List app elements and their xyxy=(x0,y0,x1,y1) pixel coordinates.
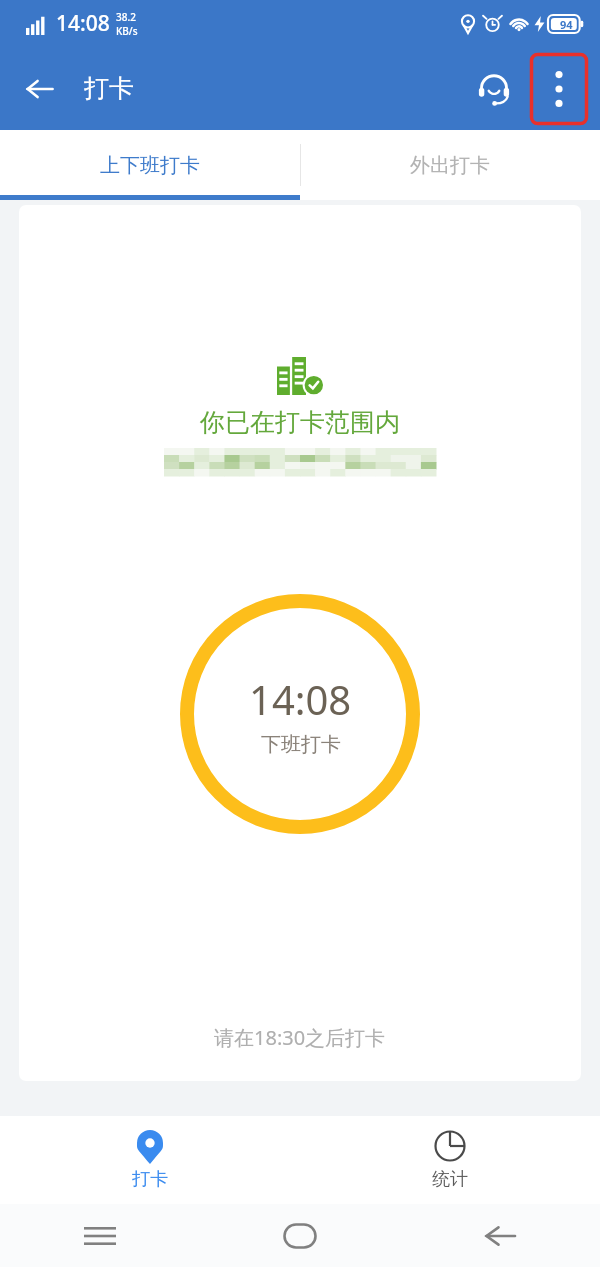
staticText: 38.2 xyxy=(116,10,136,24)
staticText: 你已在打卡范围内 xyxy=(200,407,400,438)
staticText: 上下班打卡 xyxy=(100,153,200,178)
button[interactable]: 上下班打卡 xyxy=(0,130,300,200)
button[interactable]: 打卡 xyxy=(0,1116,300,1204)
button[interactable]: Customer service xyxy=(466,61,522,117)
staticText: KB/s xyxy=(116,24,138,38)
staticText: 统计 xyxy=(432,1168,468,1191)
staticText: 14:08 xyxy=(249,672,352,726)
staticText: 打卡 xyxy=(132,1168,168,1191)
button[interactable]: 外出打卡 xyxy=(300,130,600,200)
staticText: 外出打卡 xyxy=(410,153,490,178)
button[interactable]: More options xyxy=(530,53,588,125)
staticText: 请在18:30之后打卡 xyxy=(214,1024,386,1051)
staticText: 14:08 xyxy=(56,9,110,38)
staticText: 94 xyxy=(560,17,573,32)
button[interactable]: Back xyxy=(14,63,66,115)
button[interactable]: 统计 xyxy=(300,1116,600,1204)
button[interactable]: 14:08 xyxy=(180,594,420,834)
staticText: 下班打卡 xyxy=(261,732,341,757)
staticText: 打卡 xyxy=(84,73,134,104)
